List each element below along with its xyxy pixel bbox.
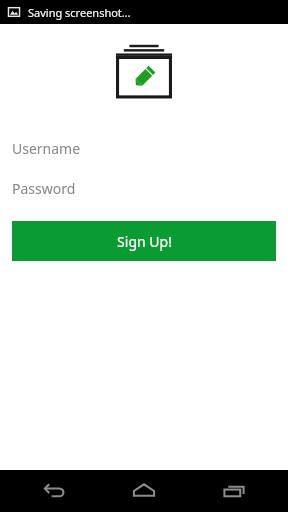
button[interactable]: Username: [0, 137, 288, 159]
button[interactable]: Password: [0, 177, 288, 199]
button[interactable]: Back: [18, 470, 90, 512]
staticText: Password: [12, 179, 76, 198]
button[interactable]: Recent apps: [198, 470, 270, 512]
staticText: Username: [12, 139, 81, 158]
staticText: Saving screenshot…: [28, 5, 131, 20]
button[interactable]: Home: [108, 470, 180, 512]
button[interactable]: Sign Up!: [12, 221, 276, 261]
staticText: Sign Up!: [117, 232, 172, 251]
